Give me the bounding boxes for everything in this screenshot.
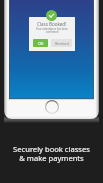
- staticText: Remind: [55, 41, 69, 46]
- staticText: Class Booked!: [37, 21, 67, 27]
- staticText: Securely book classes & make payments: [13, 144, 90, 163]
- staticText: OK: [38, 41, 44, 46]
- staticText: Your attendance has been confirmed: [36, 27, 68, 33]
- button[interactable]: Remind: [51, 39, 72, 47]
- button[interactable]: OK: [33, 39, 48, 47]
- other: Home: [45, 100, 59, 114]
